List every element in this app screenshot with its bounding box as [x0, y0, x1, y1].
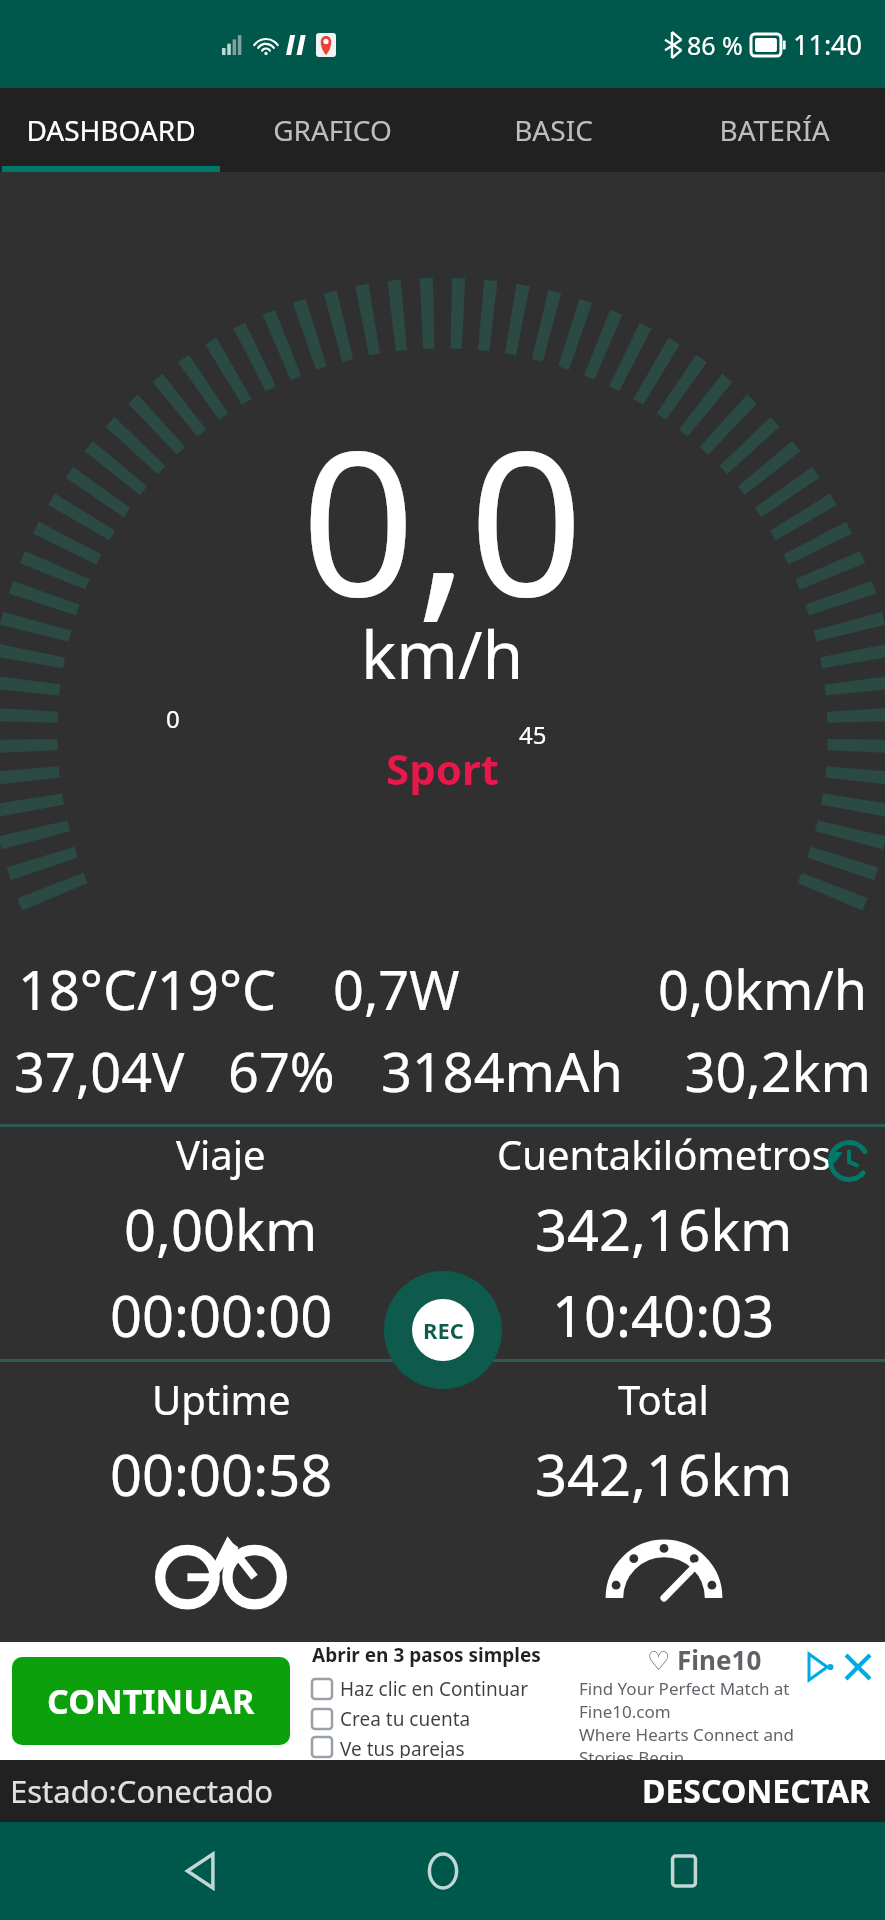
staticText: 30,2km: [658, 1034, 871, 1108]
button[interactable]: Ad choices: [805, 1650, 839, 1684]
button[interactable]: BATERÍA: [664, 88, 885, 172]
staticText: Ve tus parejas: [340, 1736, 465, 1758]
staticText: 86 %: [687, 28, 743, 62]
staticText: 00:00:58: [110, 1436, 333, 1512]
button[interactable]: REC: [384, 1271, 502, 1389]
button[interactable]: Reset odometer history: [821, 1133, 877, 1189]
staticText: 0,0km/h: [566, 952, 867, 1026]
staticText: 0,7W: [333, 952, 566, 1026]
staticText: 342,16km: [535, 1436, 793, 1512]
staticText: 0,00km: [124, 1191, 318, 1267]
button[interactable]: Recents: [644, 1831, 724, 1911]
staticText: BATERÍA: [719, 111, 830, 149]
staticText: GRAFICO: [273, 111, 392, 149]
staticText: 3184mAh: [381, 1034, 658, 1108]
staticText: DASHBOARD: [26, 111, 196, 149]
staticText: km/h: [361, 608, 524, 698]
staticText: Sport: [386, 740, 499, 797]
staticText: Estado:Conectado: [10, 1770, 274, 1812]
staticText: DESCONECTAR: [642, 1769, 871, 1813]
staticText: Where Hearts Connect and Stories Begin: [579, 1723, 829, 1760]
staticText: Crea tu cuenta: [340, 1706, 471, 1732]
staticText: 0: [166, 702, 180, 735]
staticText: 18°C/19°C: [18, 952, 333, 1026]
staticText: 45: [519, 718, 547, 751]
button[interactable]: Home: [403, 1831, 483, 1911]
button[interactable]: Close ad: [839, 1648, 877, 1686]
staticText: 67%: [228, 1034, 381, 1108]
staticText: 342,16km: [535, 1191, 793, 1267]
staticText: Find Your Perfect Match at Fine10.com: [579, 1677, 829, 1723]
staticText: Haz clic en Continuar: [340, 1676, 528, 1702]
button[interactable]: BASIC: [443, 88, 664, 172]
staticText: Viaje: [176, 1127, 266, 1181]
button[interactable]: DESCONECTAR: [642, 1769, 885, 1813]
staticText: Total: [618, 1372, 709, 1426]
staticText: 00:00:00: [110, 1277, 333, 1353]
button[interactable]: Back: [161, 1831, 241, 1911]
button[interactable]: DASHBOARD: [0, 88, 222, 172]
staticText: BASIC: [514, 111, 593, 149]
staticText: 11:40: [793, 26, 863, 63]
staticText: 0,0: [301, 382, 584, 654]
button[interactable]: CONTINUAR: [12, 1657, 290, 1745]
staticText: REC: [423, 1315, 464, 1345]
staticText: Uptime: [152, 1372, 291, 1426]
staticText: Abrir en 3 pasos simples: [312, 1642, 541, 1668]
staticText: 37,04V: [14, 1034, 228, 1108]
staticText: 10:40:03: [552, 1277, 775, 1353]
staticText: CONTINUAR: [47, 1678, 255, 1724]
button[interactable]: GRAFICO: [222, 88, 443, 172]
staticText: Cuentakilómetros: [497, 1127, 831, 1181]
staticText: ♡ Fine10: [647, 1642, 762, 1677]
